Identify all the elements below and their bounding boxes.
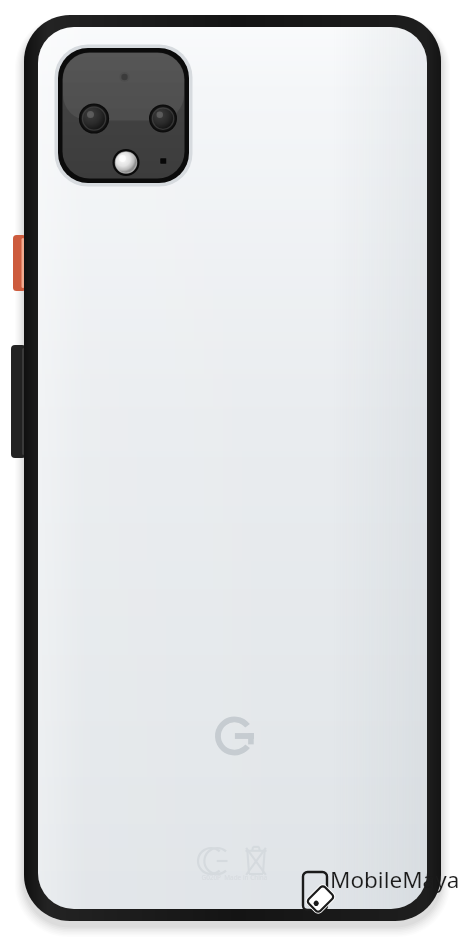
other: MobileMaya watermark <box>0 0 474 942</box>
button[interactable]: Google Pixel 4 XL Clearly White, rear vi… <box>0 0 474 942</box>
